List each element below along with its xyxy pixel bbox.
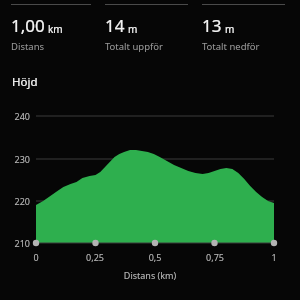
staticText: 240 xyxy=(0,110,30,122)
staticText: Distans xyxy=(11,40,45,53)
staticText: m xyxy=(128,22,138,36)
staticText: 0,25 xyxy=(75,251,115,263)
staticText: 220 xyxy=(0,195,30,207)
button[interactable]: 14 xyxy=(105,4,202,53)
staticText: Höjd xyxy=(12,74,38,90)
staticText: 0 xyxy=(16,251,56,263)
staticText: 14 xyxy=(105,14,125,37)
staticText: Totalt uppför xyxy=(105,40,163,53)
staticText: 0,75 xyxy=(195,251,235,263)
button[interactable]: Elevation profile chart xyxy=(0,90,300,298)
staticText: m xyxy=(225,22,235,36)
staticText: 13 xyxy=(202,14,222,37)
button[interactable]: 13 xyxy=(202,4,299,53)
staticText: 210 xyxy=(0,237,30,249)
staticText: Distans (km) xyxy=(0,269,300,281)
button[interactable]: 1,00 xyxy=(11,4,105,53)
staticText: 0,5 xyxy=(135,251,175,263)
staticText: km xyxy=(48,22,63,36)
staticText: 1 xyxy=(254,251,294,263)
staticText: 1,00 xyxy=(11,14,45,37)
staticText: Totalt nedför xyxy=(202,40,260,53)
staticText: 230 xyxy=(0,153,30,165)
